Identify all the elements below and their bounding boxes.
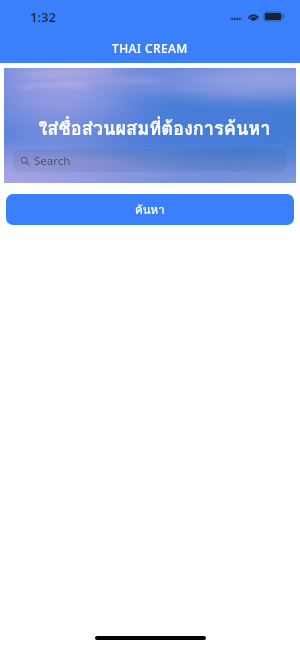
button[interactable]: ค้นหา xyxy=(6,194,294,225)
other: Cellular signal xyxy=(231,17,241,21)
other: Battery xyxy=(264,12,284,21)
staticText: Search xyxy=(34,153,71,169)
button[interactable]: Search xyxy=(13,149,287,172)
staticText: ค้นหา xyxy=(135,201,165,219)
staticText: THAI CREAM xyxy=(112,40,188,56)
staticText: ใส่ชื่อส่วนผสมที่ต้องการค้นหา xyxy=(38,114,271,143)
other: Wi-Fi xyxy=(248,12,259,21)
staticText: 1:32 xyxy=(30,8,56,26)
